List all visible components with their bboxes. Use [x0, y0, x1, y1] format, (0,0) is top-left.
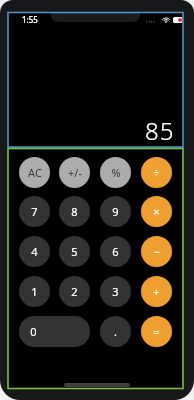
button[interactable]: 1 — [19, 276, 50, 307]
button[interactable]: 5 — [59, 236, 90, 267]
staticText: = — [153, 324, 160, 339]
staticText: 1 — [31, 284, 38, 299]
button[interactable]: + — [141, 276, 172, 307]
staticText: 6 — [112, 244, 119, 259]
staticText: ÷ — [153, 165, 160, 180]
staticText: × — [153, 204, 160, 219]
staticText: 3 — [112, 284, 119, 299]
staticText: % — [111, 165, 121, 180]
button[interactable]: 9 — [100, 196, 131, 227]
staticText: 2 — [71, 284, 78, 299]
button[interactable]: % — [100, 157, 131, 188]
staticText: 5 — [71, 244, 78, 259]
staticText: 1:55 — [22, 14, 38, 25]
button[interactable]: × — [141, 196, 172, 227]
staticText: 85 — [145, 114, 175, 147]
staticText: 8 — [71, 204, 78, 219]
button[interactable]: = — [141, 316, 172, 347]
button[interactable]: − — [141, 236, 172, 267]
button[interactable]: 0 — [19, 316, 90, 347]
staticText: 4 — [31, 244, 38, 259]
button[interactable]: 2 — [59, 276, 90, 307]
staticText: . — [114, 324, 117, 339]
button[interactable]: ÷ — [141, 157, 172, 188]
button[interactable]: AC — [19, 157, 50, 188]
button[interactable]: . — [100, 316, 131, 347]
staticText: − — [153, 244, 160, 259]
button[interactable]: 8 — [59, 196, 90, 227]
staticText: 9 — [112, 204, 119, 219]
button[interactable]: 6 — [100, 236, 131, 267]
button[interactable]: 7 — [19, 196, 50, 227]
button[interactable]: 3 — [100, 276, 131, 307]
staticText: AC — [28, 165, 42, 180]
button[interactable]: 4 — [19, 236, 50, 267]
staticText: 0 — [30, 324, 37, 339]
staticText: +/- — [68, 165, 82, 180]
button[interactable]: +/- — [59, 157, 90, 188]
staticText: + — [153, 284, 160, 299]
staticText: 7 — [31, 204, 38, 219]
